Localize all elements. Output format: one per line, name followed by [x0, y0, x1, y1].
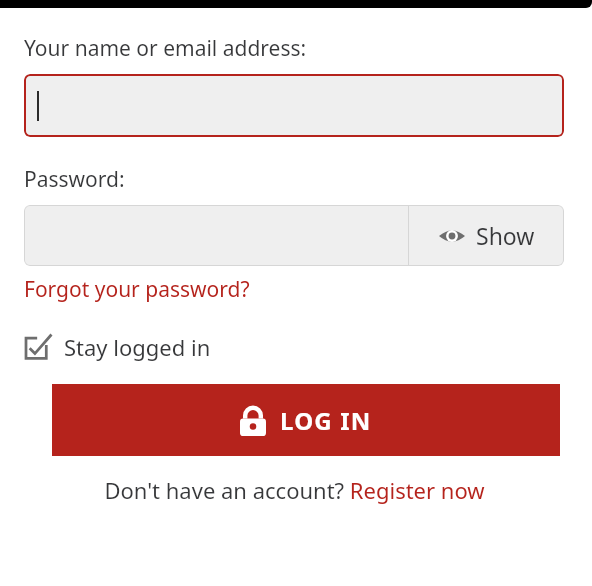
staticText: Forgot your password?: [24, 275, 250, 304]
button[interactable]: Show password: [409, 205, 564, 266]
button[interactable]: [24, 74, 564, 137]
button[interactable]: Forgot your password?: [24, 275, 250, 304]
button[interactable]: [24, 205, 408, 266]
other: Show password: [439, 227, 465, 245]
staticText: Password:: [24, 165, 125, 194]
staticText: LOG IN: [280, 404, 372, 437]
button[interactable]: LOG IN: [52, 384, 560, 456]
staticText: Your name or email address:: [24, 34, 307, 63]
button[interactable]: Stay logged in: [26, 332, 211, 362]
staticText: Don't have an account? Register now: [104, 475, 485, 505]
button[interactable]: Don't have an account? Register now: [24, 475, 564, 505]
staticText: Show: [476, 220, 535, 251]
staticText: Stay logged in: [64, 332, 211, 362]
